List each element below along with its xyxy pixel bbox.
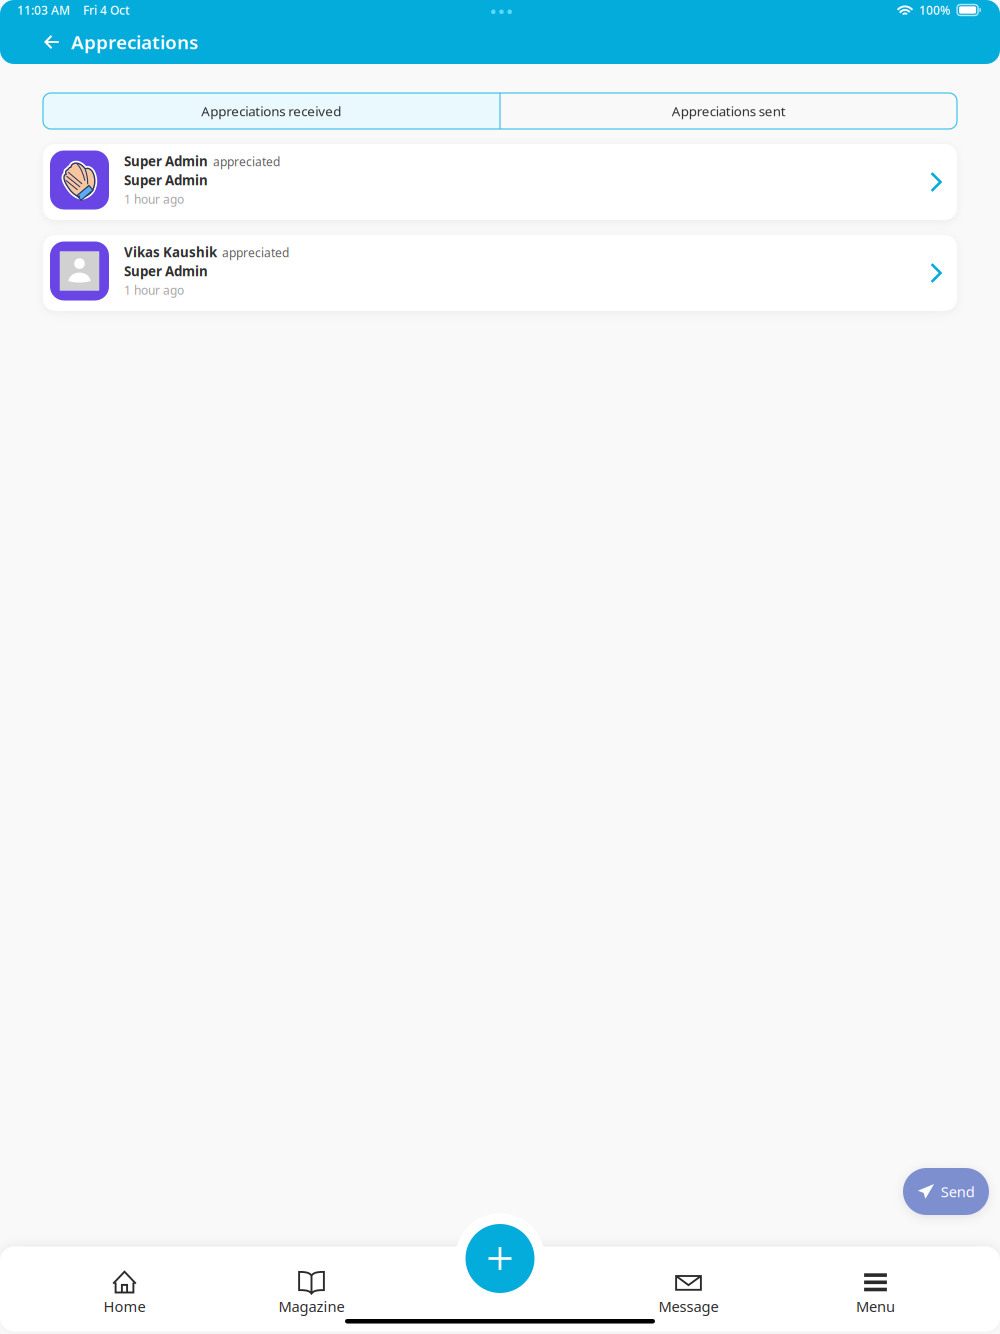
button[interactable]: Home	[31, 1270, 218, 1316]
button[interactable]: Back	[37, 24, 67, 60]
staticText: Appreciations	[71, 30, 198, 54]
staticText: Super Admin	[124, 262, 208, 280]
staticText: appreciated	[222, 244, 289, 260]
button[interactable]: Magazine	[218, 1270, 405, 1316]
staticText: 11:03 AM	[17, 2, 70, 18]
staticText: Super Admin	[124, 171, 208, 189]
staticText: Send	[941, 1182, 975, 1201]
button[interactable]: Menu	[782, 1270, 969, 1316]
staticText: 1 hour ago	[124, 191, 184, 207]
button[interactable]: Send	[903, 1168, 989, 1215]
staticText: Appreciations sent	[672, 102, 786, 120]
button[interactable]: Vikas Kaushik	[43, 235, 957, 311]
staticText: Message	[658, 1296, 718, 1316]
button[interactable]: Message	[595, 1270, 782, 1316]
staticText: Magazine	[278, 1296, 344, 1316]
button[interactable]: Appreciations sent	[501, 93, 957, 129]
button[interactable]: Super Admin	[43, 144, 957, 220]
staticText: Fri 4 Oct	[83, 2, 130, 18]
staticText: Appreciations received	[201, 102, 341, 120]
staticText: Home	[103, 1296, 145, 1316]
staticText: appreciated	[213, 153, 280, 169]
staticText: Vikas Kaushik	[124, 243, 217, 261]
staticText: 1 hour ago	[124, 282, 184, 298]
staticText: Menu	[856, 1296, 895, 1316]
staticText: 100%	[919, 2, 950, 18]
button[interactable]: Add	[455, 1213, 545, 1303]
staticText: Super Admin	[124, 152, 208, 170]
button[interactable]: Appreciations received	[43, 93, 499, 129]
